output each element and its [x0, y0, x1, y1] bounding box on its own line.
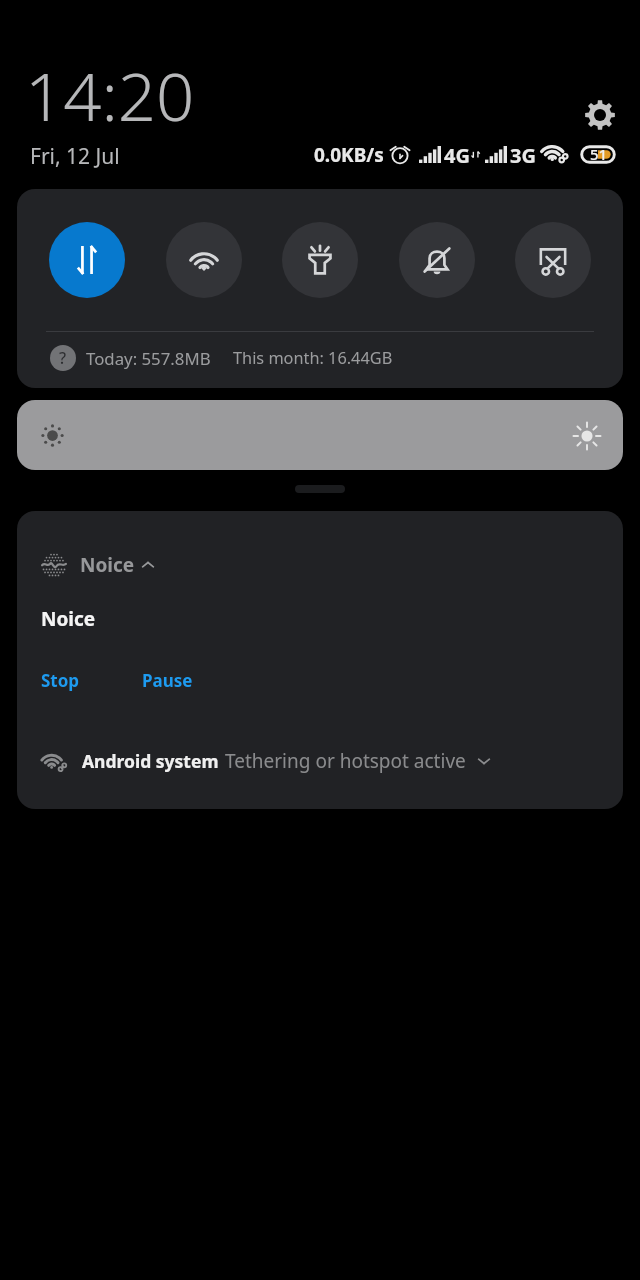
button[interactable]: Settings: [578, 93, 622, 137]
button[interactable]: Noice: [41, 549, 157, 581]
staticText: Tethering or hotspot active: [225, 748, 466, 774]
button[interactable]: Stop: [35, 666, 86, 695]
button[interactable]: Mobile data: [49, 222, 125, 298]
staticText: ?: [59, 347, 67, 369]
staticText: Stop: [41, 669, 80, 692]
button[interactable]: Brightness: [17, 400, 623, 470]
button[interactable]: Pause: [136, 666, 199, 695]
button[interactable]: Android system: [41, 744, 493, 778]
staticText: 4G: [444, 142, 470, 166]
staticText: 3G: [510, 142, 536, 166]
staticText: 51: [590, 144, 608, 164]
staticText: Pause: [142, 669, 193, 692]
staticText: 0.0KB/s: [314, 142, 384, 166]
staticText: Fri, 12 Jul: [30, 142, 120, 171]
button[interactable]: Do not disturb: [399, 222, 475, 298]
button[interactable]: Data usage info: [50, 345, 76, 371]
button[interactable]: Wi-Fi: [166, 222, 242, 298]
staticText: Today: 557.8MB: [86, 347, 211, 370]
staticText: 14:20: [25, 49, 195, 140]
staticText: Noice: [80, 552, 135, 578]
staticText: Noice: [41, 606, 96, 632]
staticText: Android system: [82, 749, 219, 773]
button[interactable]: Screenshot: [515, 222, 591, 298]
button[interactable]: Flashlight: [282, 222, 358, 298]
staticText: This month: 16.44GB: [233, 347, 393, 369]
